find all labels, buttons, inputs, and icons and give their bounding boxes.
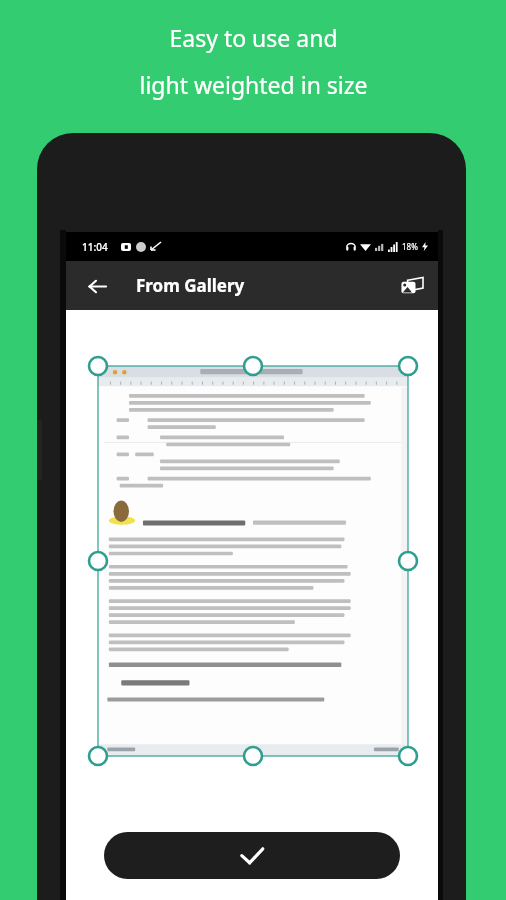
- staticText: Easy to use and: [169, 22, 338, 53]
- staticText: 18%: [402, 241, 418, 252]
- button[interactable]: Open gallery: [394, 268, 430, 304]
- button[interactable]: Confirm: [104, 832, 400, 879]
- button[interactable]: Back: [80, 269, 114, 303]
- staticText: From Gallery: [136, 274, 245, 297]
- staticText: light weighted in size: [139, 69, 368, 100]
- staticText: 11:04: [82, 240, 108, 254]
